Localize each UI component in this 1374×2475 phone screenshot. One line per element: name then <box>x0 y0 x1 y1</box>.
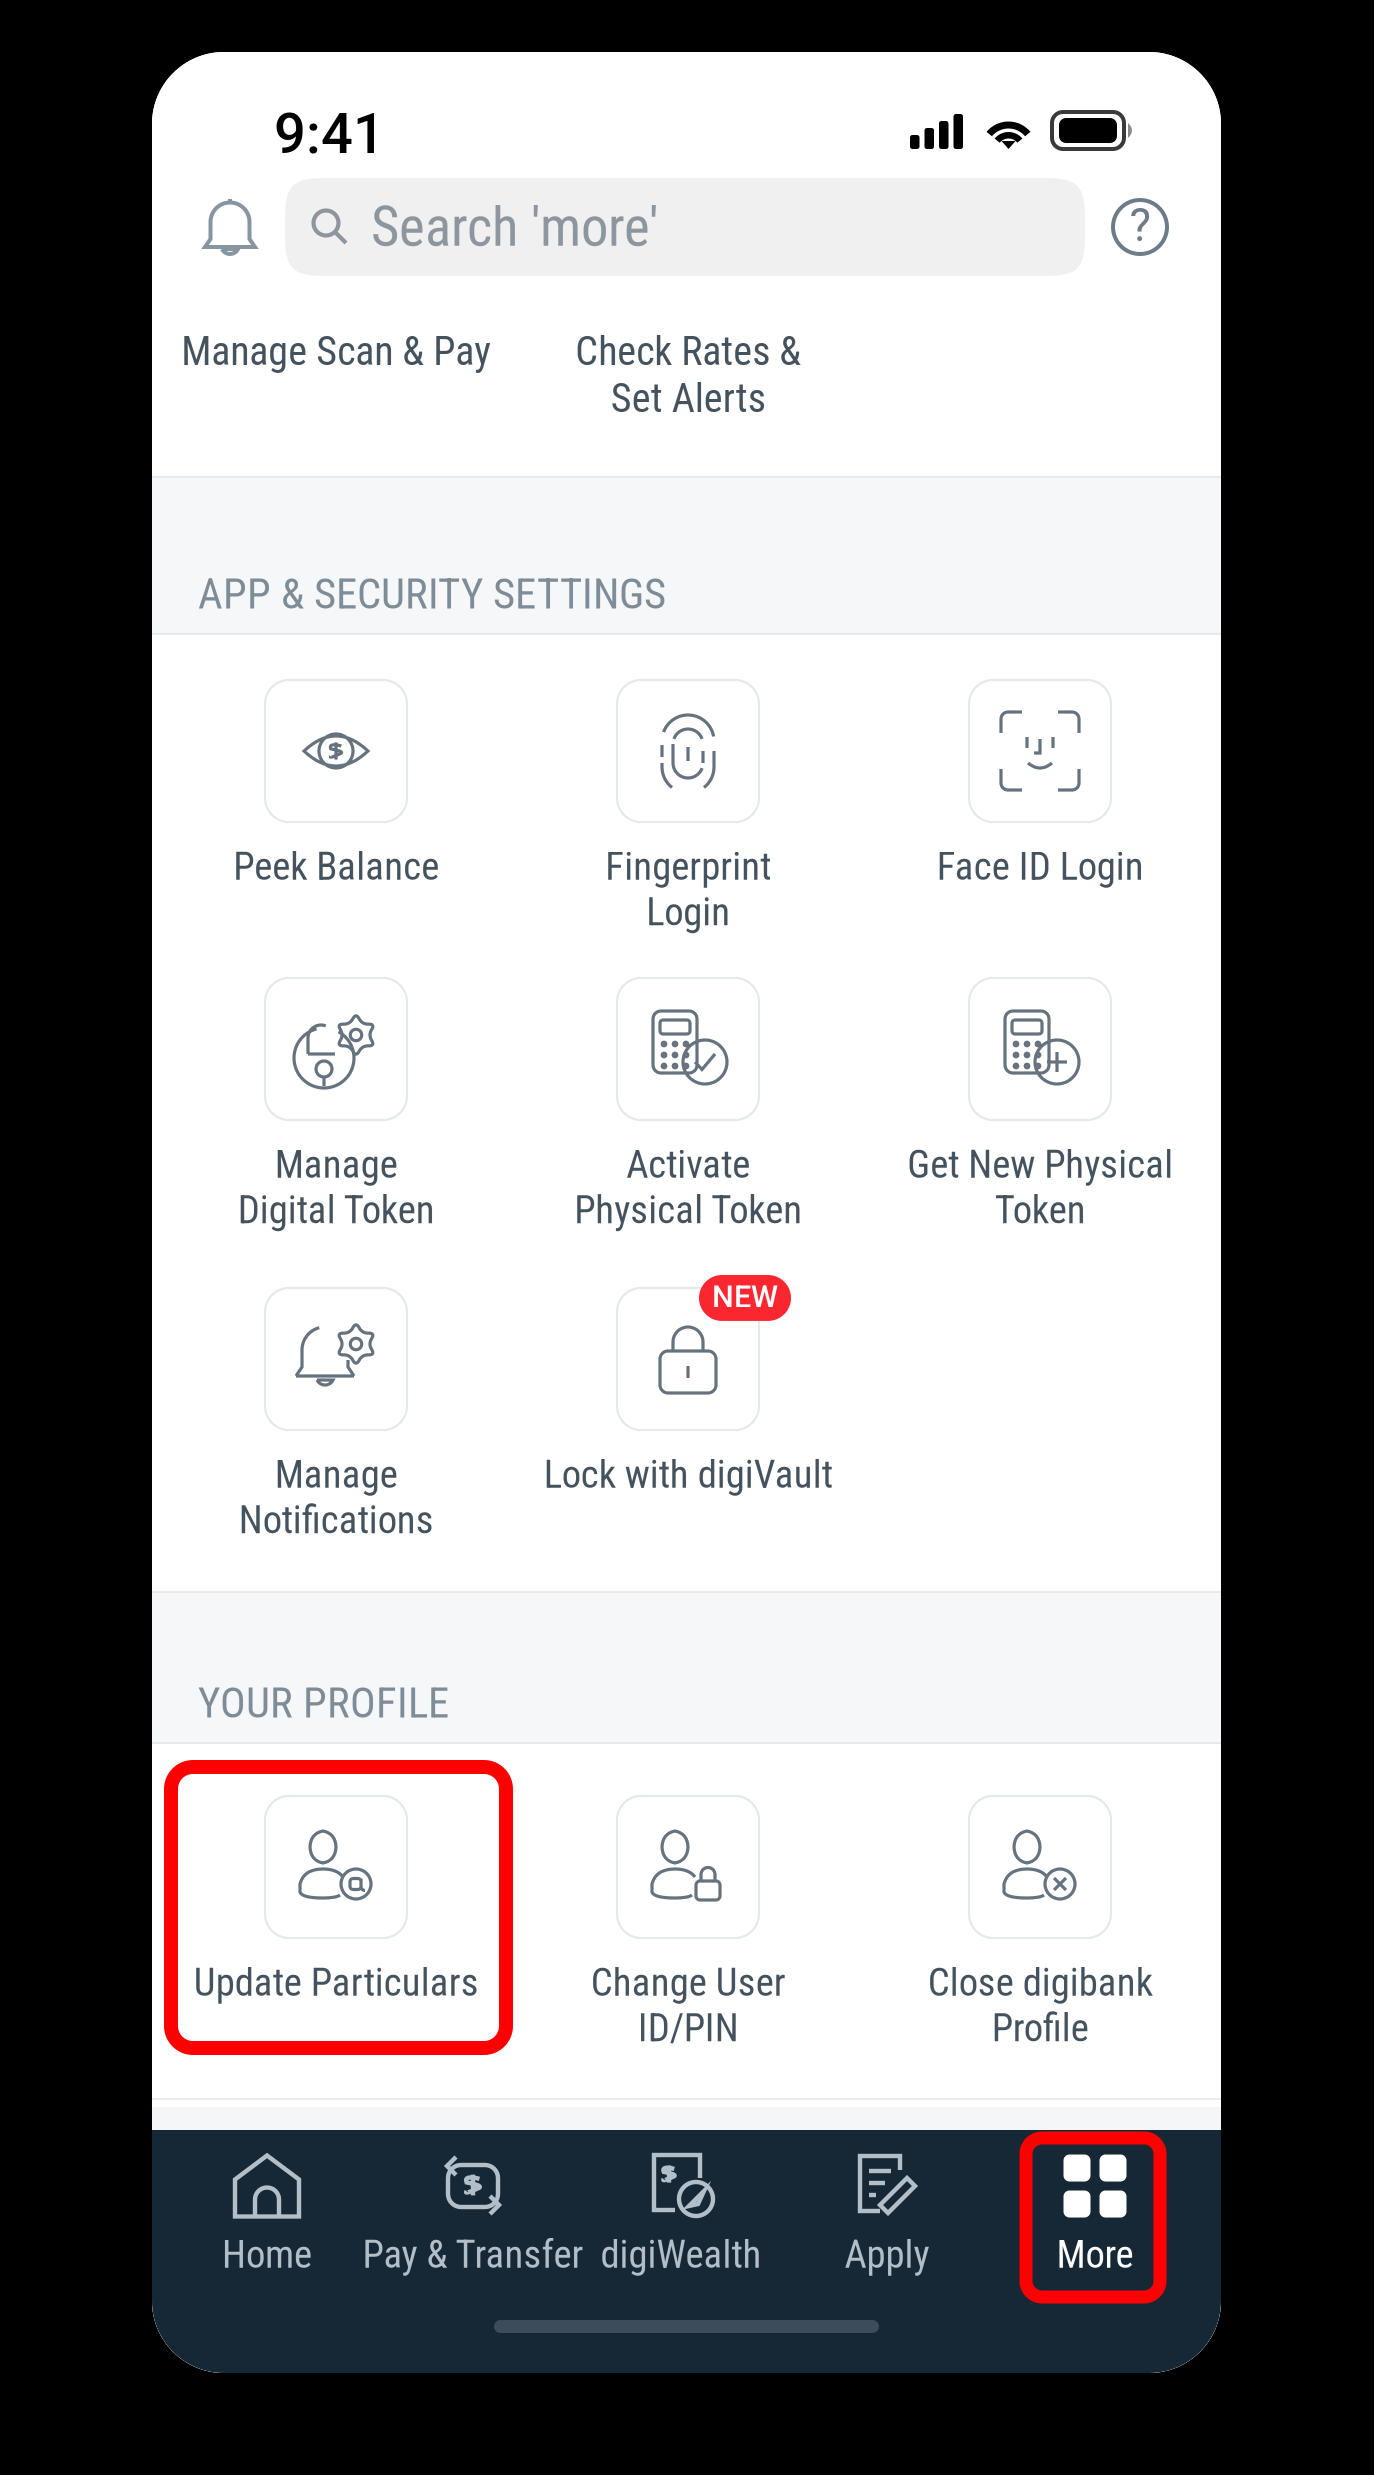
button[interactable]: Face ID Login <box>864 658 1216 943</box>
button[interactable]: Search 'more' <box>285 178 1085 276</box>
staticText: 9:41 <box>274 101 385 167</box>
staticText: Close digibank Profile <box>927 1960 1152 2051</box>
button[interactable]: Manage Digital Token <box>160 956 512 1241</box>
staticText: Manage Digital Token <box>237 1142 434 1233</box>
button[interactable]: Home <box>142 2130 392 2298</box>
staticText: Lock with digiVault <box>543 1452 832 1497</box>
staticText: NEW <box>712 1279 778 1315</box>
button[interactable]: Notifications <box>176 174 284 280</box>
staticText: Change User ID/PIN <box>590 1960 785 2051</box>
button[interactable]: More <box>970 2130 1220 2298</box>
button[interactable]: Manage Scan & Pay <box>160 328 512 448</box>
staticText: APP & SECURITY SETTINGS <box>198 569 666 619</box>
button[interactable]: Activate Physical Token <box>512 956 864 1241</box>
staticText: Activate Physical Token <box>574 1142 802 1233</box>
button[interactable]: Peek Balance <box>160 658 512 943</box>
staticText: More <box>1056 2232 1133 2277</box>
staticText: Home <box>222 2232 312 2277</box>
staticText: Check Rates & Set Alerts <box>575 328 801 422</box>
staticText: digiWealth <box>600 2232 761 2277</box>
button[interactable]: Fingerprint Login <box>512 658 864 943</box>
button[interactable]: NEW <box>512 1266 864 1551</box>
button[interactable]: Help <box>1092 179 1188 275</box>
staticText: Apply <box>844 2232 929 2277</box>
staticText: Search 'more' <box>371 195 659 259</box>
staticText: Face ID Login <box>936 844 1143 889</box>
staticText: Manage Scan & Pay <box>181 328 491 375</box>
button[interactable]: Apply <box>762 2130 1012 2298</box>
staticText: Peek Balance <box>233 844 439 889</box>
staticText: Fingerprint Login <box>605 844 771 935</box>
button[interactable]: Pay & Transfer <box>348 2130 598 2298</box>
button[interactable]: Check Rates & Set Alerts <box>512 328 864 448</box>
staticText: ? <box>1129 199 1150 252</box>
button[interactable]: Update Particulars <box>160 1774 512 2059</box>
button[interactable]: Get New Physical Token <box>864 956 1216 1241</box>
staticText: Get New Physical Token <box>907 1142 1173 1233</box>
button[interactable]: digiWealth <box>556 2130 806 2298</box>
button[interactable]: Close digibank Profile <box>864 1774 1216 2059</box>
button[interactable]: Change User ID/PIN <box>512 1774 864 2059</box>
staticText: Pay & Transfer <box>362 2232 583 2277</box>
staticText: YOUR PROFILE <box>198 1678 449 1728</box>
staticText: Update Particulars <box>193 1960 478 2005</box>
staticText: Manage Notifications <box>238 1452 433 1543</box>
button[interactable]: Manage Notifications <box>160 1266 512 1551</box>
